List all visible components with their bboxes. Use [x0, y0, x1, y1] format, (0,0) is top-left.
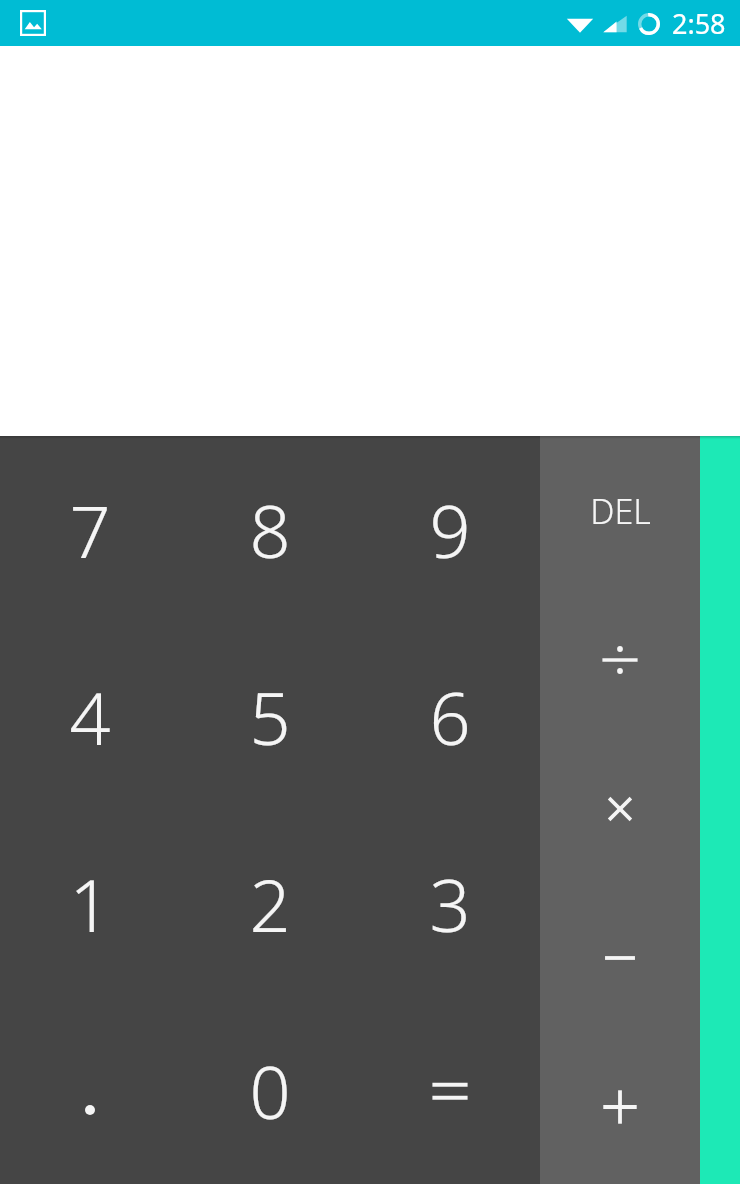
button[interactable]: 6 [360, 623, 540, 810]
button[interactable]: Equals [360, 997, 540, 1184]
button[interactable]: 9 [360, 436, 540, 623]
staticText: 6 [429, 668, 471, 766]
staticText: 9 [429, 481, 471, 579]
button[interactable]: 3 [360, 810, 540, 997]
staticText: 4 [69, 668, 111, 766]
staticText: 0 [249, 1042, 291, 1140]
button[interactable]: 8 [180, 436, 360, 623]
other: Divide [540, 585, 700, 734]
other: Delete [540, 436, 700, 585]
staticText: DEL [590, 488, 651, 534]
button[interactable]: Multiply [540, 734, 700, 883]
button[interactable] [0, 997, 180, 1184]
other: Screenshot notification [20, 10, 46, 36]
staticText: 5 [249, 668, 291, 766]
other: Equals [360, 997, 540, 1184]
staticText: 8 [249, 481, 291, 579]
staticText: 1 [69, 855, 111, 953]
button[interactable]: 2 [180, 810, 360, 997]
button[interactable]: 4 [0, 623, 180, 810]
button[interactable]: Divide [540, 585, 700, 734]
button[interactable]: 5 [180, 623, 360, 810]
button[interactable]: 7 [0, 436, 180, 623]
staticText: 2:58 [672, 5, 726, 42]
other: Multiply [540, 734, 700, 883]
button[interactable]: Plus [540, 1032, 700, 1181]
button[interactable]: 1 [0, 810, 180, 997]
staticText: 3 [429, 855, 471, 953]
button[interactable]: Minus [540, 883, 700, 1032]
button[interactable]: Delete [540, 436, 700, 585]
staticText: 7 [69, 481, 111, 579]
staticText: 2 [249, 855, 291, 953]
button[interactable]: 0 [180, 997, 360, 1184]
other: Minus [540, 883, 700, 1032]
other: Plus [540, 1032, 700, 1181]
